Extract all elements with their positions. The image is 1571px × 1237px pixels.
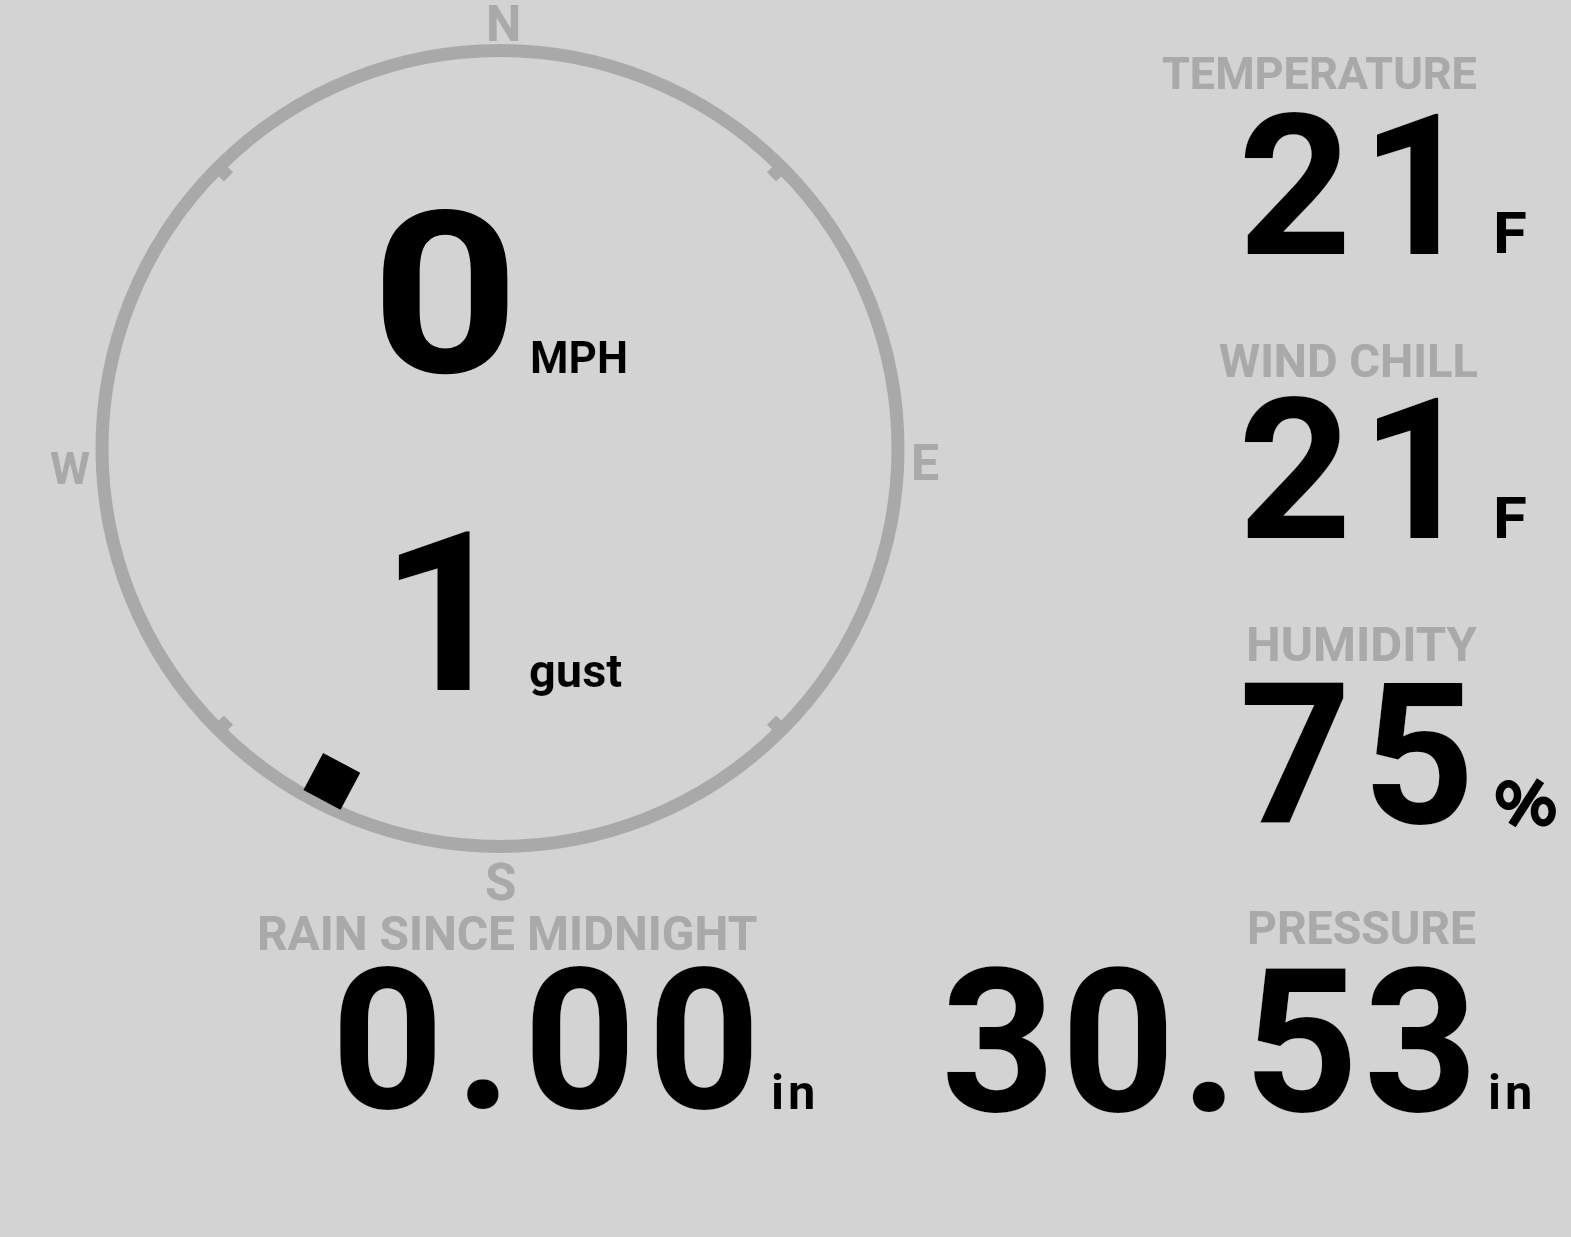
staticText: MPH: [530, 332, 629, 384]
button[interactable]: Wind direction compass: [0, 0, 1000, 900]
staticText: in: [1488, 1064, 1537, 1121]
staticText: F: [1493, 484, 1527, 552]
staticText: RAIN SINCE MIDNIGHT: [257, 906, 758, 962]
staticText: 21: [1238, 356, 1484, 586]
staticText: 30.53: [941, 925, 1484, 1159]
button[interactable]: Rain since midnight 0.00 inches: [250, 900, 825, 1115]
staticText: 21: [1238, 72, 1484, 302]
staticText: 1: [380, 484, 512, 744]
staticText: gust: [529, 643, 623, 698]
staticText: N: [486, 0, 522, 54]
staticText: WIND CHILL: [1219, 333, 1478, 388]
staticText: in: [771, 1064, 820, 1121]
staticText: PRESSURE: [1247, 901, 1476, 955]
button[interactable]: Pressure 30.53 inches: [930, 900, 1560, 1115]
button[interactable]: Wind chill 21 F: [1150, 332, 1560, 544]
staticText: TEMPERATURE: [1162, 47, 1477, 100]
staticText: 75: [1239, 641, 1486, 871]
staticText: F: [1493, 199, 1527, 267]
button[interactable]: Temperature 21 F: [1150, 45, 1560, 260]
button[interactable]: Humidity 75 percent: [1150, 615, 1560, 830]
staticText: E: [911, 434, 940, 493]
staticText: HUMIDITY: [1246, 616, 1477, 672]
staticText: 0.00: [331, 925, 772, 1156]
staticText: W: [50, 443, 91, 495]
staticText: S: [485, 853, 517, 913]
staticText: 0: [371, 162, 520, 427]
